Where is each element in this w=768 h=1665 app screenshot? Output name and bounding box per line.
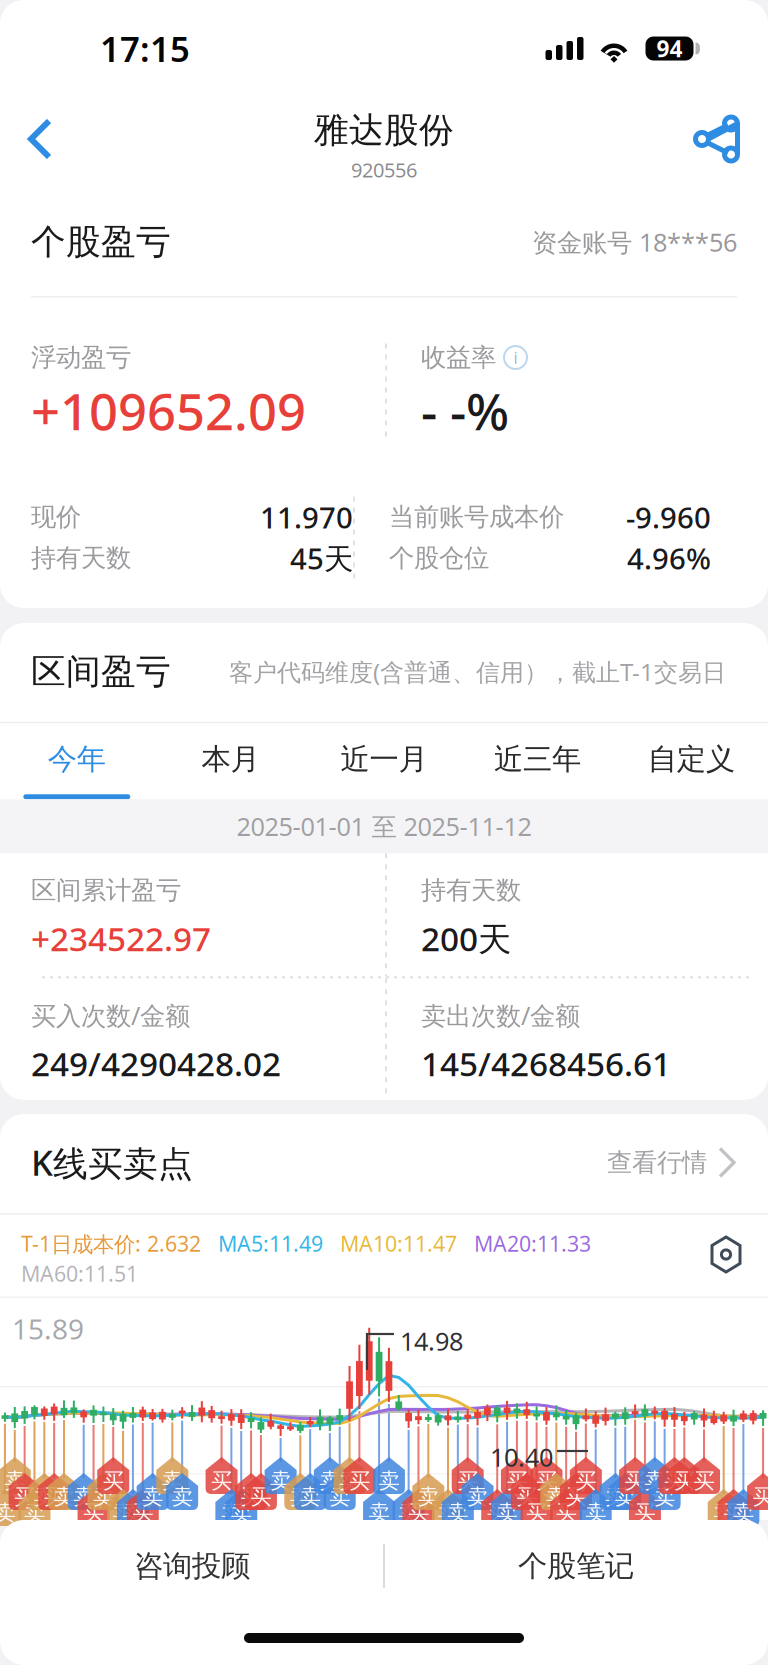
staticText: 持有天数: [421, 875, 521, 906]
staticText: 卖: [585, 1500, 606, 1526]
staticText: 自定义: [648, 741, 735, 777]
button[interactable]: Back: [0, 89, 84, 189]
staticText: K线买卖点: [31, 1139, 193, 1186]
staticText: 买: [132, 1500, 153, 1526]
staticText: 买: [211, 1468, 232, 1494]
button[interactable]: 个股笔记: [384, 1520, 768, 1612]
staticText: 买: [408, 1500, 429, 1526]
staticText: 个股盈亏: [31, 221, 171, 263]
button[interactable]: Share: [666, 89, 768, 189]
button[interactable]: 自定义: [614, 723, 768, 799]
staticText: 卖: [24, 1500, 45, 1526]
staticText: 买: [575, 1468, 596, 1494]
staticText: 现价: [31, 501, 81, 532]
staticText: 卖: [467, 1484, 488, 1510]
staticText: 卖: [378, 1468, 399, 1494]
staticText: MA60:11.51: [21, 1259, 138, 1288]
staticText: 本月: [201, 741, 259, 777]
staticText: 卖: [142, 1484, 163, 1510]
staticText: 买: [693, 1468, 714, 1494]
staticText: 买入次数/金额: [31, 998, 190, 1032]
staticText: 买: [44, 1484, 65, 1510]
staticText: 14.98: [400, 1324, 463, 1358]
staticText: 浮动盈亏: [31, 342, 131, 373]
staticText: 卖: [447, 1500, 468, 1526]
staticText: 卖: [270, 1468, 291, 1494]
staticText: 4.96%: [627, 538, 711, 577]
staticText: 卖: [221, 1500, 242, 1526]
staticText: 买: [487, 1500, 508, 1526]
staticText: 卖: [93, 1484, 114, 1510]
staticText: 卖: [339, 1468, 360, 1494]
staticText: 94: [656, 33, 682, 63]
staticText: +234522.97: [31, 916, 211, 960]
staticText: 卖: [654, 1484, 675, 1510]
staticText: 10.40: [490, 1440, 553, 1474]
staticText: 卖: [231, 1500, 252, 1526]
staticText: MA20:11.33: [474, 1229, 591, 1258]
staticText: 查看行情: [607, 1147, 707, 1178]
staticText: 买: [556, 1500, 577, 1526]
staticText: 卖: [605, 1484, 626, 1510]
staticText: 卖出次数/金额: [421, 998, 580, 1032]
staticText: 45天: [290, 538, 353, 577]
staticText: 客户代码维度(含普通、信用），截止T-1交易日: [229, 656, 726, 688]
staticText: 卖: [398, 1500, 419, 1526]
button[interactable]: Chart settings: [708, 1214, 744, 1274]
staticText: 今年: [48, 741, 106, 777]
staticText: 买: [565, 1484, 586, 1510]
button[interactable]: 本月: [154, 723, 307, 799]
staticText: 卖: [4, 1468, 25, 1494]
staticText: 920556: [351, 156, 417, 183]
button[interactable]: 近一月: [307, 723, 461, 799]
staticText: 卖: [369, 1500, 390, 1526]
staticText: 卖: [418, 1484, 439, 1510]
staticText: 买: [753, 1484, 768, 1510]
staticText: 买: [625, 1468, 646, 1494]
staticText: 卖: [73, 1484, 94, 1510]
staticText: 卖: [0, 1500, 15, 1526]
staticText: 卖: [53, 1484, 74, 1510]
button[interactable]: 咨询投顾: [0, 1520, 384, 1612]
staticText: 买: [457, 1468, 478, 1494]
staticText: 买: [241, 1484, 262, 1510]
staticText: 卖: [122, 1500, 143, 1526]
staticText: 卖: [290, 1484, 311, 1510]
staticText: 卖: [546, 1484, 567, 1510]
staticText: 区间盈亏: [31, 650, 171, 693]
staticText: 当前账号成本价: [389, 501, 564, 532]
staticText: 卖: [437, 1500, 458, 1526]
staticText: 收益率: [421, 342, 496, 373]
staticText: 买: [506, 1468, 527, 1494]
staticText: 卖: [713, 1500, 734, 1526]
staticText: 买: [516, 1484, 537, 1510]
staticText: 买: [103, 1468, 124, 1494]
staticText: 2025-01-01 至 2025-11-12: [236, 809, 531, 843]
staticText: - -%: [421, 377, 509, 444]
staticText: 卖: [162, 1468, 183, 1494]
staticText: 17:15: [100, 25, 190, 71]
staticText: 卖: [497, 1500, 518, 1526]
staticText: 11.970: [260, 497, 353, 536]
staticText: 持有天数: [31, 542, 131, 573]
staticText: 145/4268456.61: [421, 1041, 671, 1085]
staticText: MA10:11.47: [340, 1229, 457, 1258]
staticText: 15.89: [12, 1310, 84, 1347]
staticText: MA5:11.49: [218, 1229, 323, 1258]
button[interactable]: 今年: [0, 723, 154, 799]
staticText: 咨询投顾: [134, 1548, 250, 1584]
button[interactable]: 查看行情: [607, 1145, 737, 1179]
staticText: 买: [634, 1500, 655, 1526]
staticText: 买: [674, 1468, 695, 1494]
staticText: 卖: [172, 1484, 193, 1510]
staticText: -9.960: [626, 497, 711, 536]
staticText: 买: [723, 1500, 744, 1526]
button[interactable]: 近三年: [461, 723, 614, 799]
staticText: 买: [526, 1500, 547, 1526]
staticText: 卖: [644, 1468, 665, 1494]
staticText: 卖: [733, 1500, 754, 1526]
staticText: 近三年: [494, 741, 581, 777]
staticText: 个股笔记: [518, 1548, 634, 1584]
staticText: 卖: [113, 1500, 134, 1526]
staticText: 249/4290428.02: [31, 1041, 281, 1085]
